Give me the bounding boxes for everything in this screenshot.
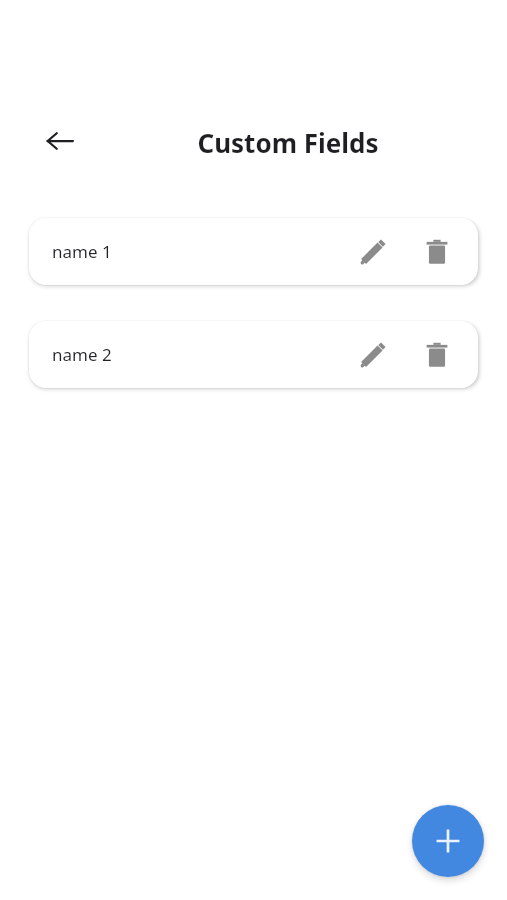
staticText: Custom Fields: [197, 125, 379, 160]
button[interactable]: name 1: [29, 218, 478, 285]
staticText: name 1: [52, 240, 112, 263]
button[interactable]: Delete: [414, 229, 460, 275]
button[interactable]: Add custom field: [412, 805, 484, 877]
button[interactable]: Edit: [349, 229, 395, 275]
button[interactable]: Back: [36, 117, 84, 165]
staticText: name 2: [52, 343, 112, 366]
button[interactable]: Delete: [414, 332, 460, 378]
button[interactable]: name 2: [29, 321, 478, 388]
button[interactable]: Edit: [349, 332, 395, 378]
